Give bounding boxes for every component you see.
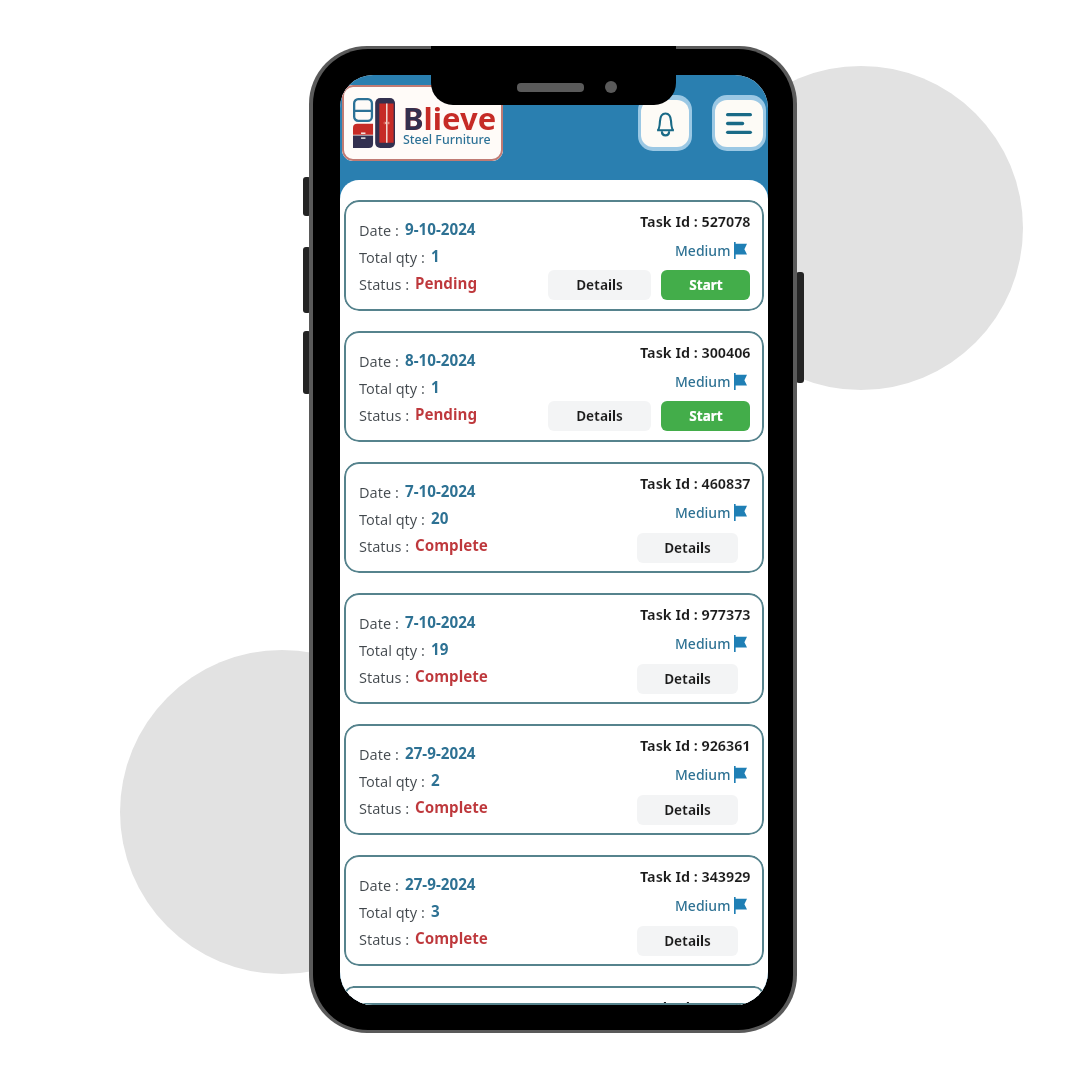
staticText: Task Id : 527078	[640, 212, 751, 231]
staticText: Medium	[675, 241, 731, 260]
staticText: Medium	[675, 896, 731, 915]
button[interactable]: Notifications	[638, 95, 692, 151]
staticText: Task Id : 111222	[640, 998, 751, 1005]
staticText: Details	[576, 276, 623, 294]
staticText: Task Id : 926361	[640, 736, 751, 755]
staticText: 2	[431, 770, 440, 791]
staticText: Date :	[359, 875, 403, 895]
button[interactable]: Details	[548, 270, 651, 300]
button[interactable]: Start	[661, 270, 750, 300]
button[interactable]: Menu	[712, 95, 766, 151]
staticText: Total qty :	[359, 640, 429, 660]
staticText: Task Id : 343929	[640, 867, 751, 886]
staticText: B	[403, 97, 424, 139]
staticText: Status :	[359, 274, 413, 294]
button[interactable]: Date :	[344, 462, 764, 573]
button[interactable]: Date :	[344, 200, 764, 311]
staticText: Blieve	[403, 97, 497, 139]
staticText: 1	[431, 377, 440, 398]
staticText: 27-9-2024	[405, 874, 476, 895]
staticText: 3	[431, 901, 440, 922]
staticText: Date :	[359, 482, 403, 502]
staticText: Total qty :	[359, 247, 429, 267]
button[interactable]: Date :	[344, 593, 764, 704]
staticText: Date :	[359, 744, 403, 764]
staticText: Details	[664, 670, 711, 688]
staticText: Task Id : 460837	[640, 474, 751, 493]
staticText: Total qty :	[359, 378, 429, 398]
staticText: 1	[431, 246, 440, 267]
button[interactable]: Date :	[344, 855, 764, 966]
staticText: 9-10-2024	[405, 219, 476, 240]
staticText: Date :	[359, 220, 403, 240]
staticText: Status :	[359, 798, 413, 818]
button[interactable]: Details	[548, 401, 651, 431]
staticText: Start	[689, 407, 723, 425]
staticText: 7-10-2024	[405, 481, 476, 502]
staticText: Pending	[415, 273, 477, 294]
staticText: 8-10-2024	[405, 350, 476, 371]
staticText: Total qty :	[359, 902, 429, 922]
staticText: Task Id : 300406	[640, 343, 751, 362]
button[interactable]: Blieve	[342, 85, 503, 161]
staticText: Status :	[359, 929, 413, 949]
staticText: Complete	[415, 928, 488, 949]
staticText: Pending	[415, 404, 477, 425]
staticText: Medium	[675, 765, 731, 784]
button[interactable]: Details	[637, 795, 738, 825]
staticText: 19	[431, 639, 449, 660]
staticText: Start	[689, 276, 723, 294]
staticText: Medium	[675, 503, 731, 522]
staticText: Medium	[675, 372, 731, 391]
staticText: Status :	[359, 536, 413, 556]
button[interactable]: Date :	[344, 724, 764, 835]
staticText: Task Id : 977373	[640, 605, 751, 624]
staticText: Total qty :	[359, 771, 429, 791]
staticText: 7-10-2024	[405, 612, 476, 633]
staticText: 27-9-2024	[405, 743, 476, 764]
button[interactable]: Start	[661, 401, 750, 431]
staticText: Details	[576, 407, 623, 425]
staticText: Complete	[415, 666, 488, 687]
button[interactable]: Date :	[344, 986, 764, 1005]
button[interactable]: Details	[637, 533, 738, 563]
staticText: Complete	[415, 797, 488, 818]
staticText: Details	[664, 801, 711, 819]
staticText: Details	[664, 932, 711, 950]
staticText: Date :	[359, 613, 403, 633]
staticText: 20	[431, 508, 449, 529]
staticText: Medium	[675, 634, 731, 653]
staticText: Date :	[359, 351, 403, 371]
button[interactable]: Details	[637, 926, 738, 956]
staticText: Steel Furniture	[403, 131, 491, 148]
staticText: Details	[664, 539, 711, 557]
staticText: Status :	[359, 405, 413, 425]
button[interactable]: Details	[637, 664, 738, 694]
staticText: Total qty :	[359, 509, 429, 529]
button[interactable]: Date :	[344, 331, 764, 442]
staticText: Complete	[415, 535, 488, 556]
staticText: Status :	[359, 667, 413, 687]
